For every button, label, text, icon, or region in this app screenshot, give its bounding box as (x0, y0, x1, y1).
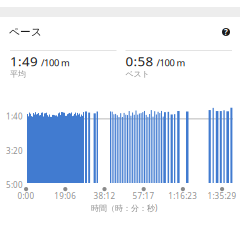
staticText: ベスト (125, 69, 149, 79)
button[interactable]: Help (219, 25, 233, 39)
staticText: ペース (9, 25, 42, 39)
staticText: 5:00 (6, 180, 23, 190)
staticText: /100 m (156, 56, 185, 69)
staticText: 1:49 (10, 52, 38, 70)
staticText: 1:40 (6, 111, 23, 122)
staticText: 3:20 (6, 146, 23, 156)
staticText: 平均 (10, 69, 26, 79)
staticText: 19:06 (54, 191, 76, 201)
staticText: 0:58 (125, 52, 153, 70)
staticText: 57:17 (133, 191, 155, 201)
staticText: 1:16:23 (168, 191, 197, 201)
staticText: 時間（時：分：秒) (91, 203, 157, 213)
staticText: ? (224, 27, 228, 37)
staticText: 1:35:29 (207, 191, 236, 201)
staticText: 38:12 (93, 191, 115, 201)
staticText: 0:00 (17, 191, 34, 201)
staticText: /100 m (41, 56, 70, 69)
